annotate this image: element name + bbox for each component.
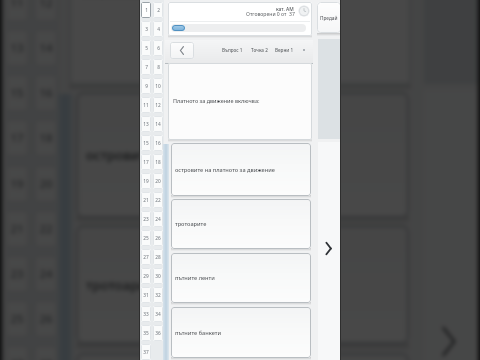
staticText: 3 bbox=[145, 26, 148, 33]
button[interactable]: 15 bbox=[141, 135, 151, 151]
staticText: 21 bbox=[143, 197, 149, 204]
button[interactable]: 23 bbox=[141, 211, 151, 227]
staticText: Платното за движение включва: bbox=[173, 97, 260, 104]
staticText: 26 bbox=[155, 235, 161, 242]
button[interactable]: 33 bbox=[141, 306, 151, 322]
staticText: 26 bbox=[39, 311, 53, 327]
staticText: 17 bbox=[143, 159, 149, 166]
button[interactable]: 31 bbox=[141, 287, 151, 303]
button[interactable]: 37 bbox=[141, 344, 151, 360]
staticText: 31 bbox=[143, 292, 149, 299]
staticText: 29 bbox=[143, 273, 149, 280]
staticText: 23 bbox=[143, 216, 149, 223]
button[interactable]: 32 bbox=[153, 287, 163, 303]
button[interactable]: 2 bbox=[153, 2, 163, 18]
staticText: Въпрос 1 bbox=[222, 47, 243, 53]
button[interactable]: Back bbox=[170, 42, 194, 59]
button[interactable]: 19 bbox=[141, 173, 151, 189]
staticText: 18 bbox=[155, 159, 161, 166]
button[interactable]: 35 bbox=[141, 325, 151, 341]
staticText: Точка 2 bbox=[251, 47, 268, 53]
staticText: 15 bbox=[10, 85, 24, 101]
staticText: 20 bbox=[39, 176, 53, 192]
button[interactable]: 9 bbox=[141, 78, 151, 94]
staticText: 12 bbox=[155, 102, 161, 109]
staticText: 36 bbox=[155, 330, 161, 337]
button[interactable]: 26 bbox=[153, 230, 163, 246]
staticText: 1 bbox=[145, 7, 148, 14]
button[interactable]: 16 bbox=[153, 135, 163, 151]
staticText: 15 bbox=[143, 140, 149, 147]
button[interactable]: 5 bbox=[141, 40, 151, 56]
staticText: 16 bbox=[39, 85, 53, 101]
staticText: 7 bbox=[145, 64, 148, 71]
staticText: 18 bbox=[39, 130, 53, 146]
button[interactable]: 30 bbox=[153, 268, 163, 284]
staticText: Верни 1 bbox=[275, 47, 294, 53]
button[interactable]: 34 bbox=[153, 306, 163, 322]
button[interactable]: 8 bbox=[153, 59, 163, 75]
button[interactable]: 12 bbox=[153, 97, 163, 113]
staticText: тротоарите bbox=[86, 276, 161, 294]
staticText: пътните ленти bbox=[175, 274, 215, 282]
button[interactable]: Предай bbox=[317, 2, 341, 33]
staticText: 14 bbox=[39, 40, 53, 56]
staticText: 14 bbox=[155, 121, 161, 128]
staticText: 2 bbox=[157, 7, 160, 14]
staticText: 8 bbox=[157, 64, 160, 71]
staticText: 4 bbox=[157, 26, 160, 33]
button[interactable]: пътните ленти bbox=[171, 253, 311, 303]
button[interactable]: 21 bbox=[141, 192, 151, 208]
staticText: 16 bbox=[155, 140, 161, 147]
staticText: 37 bbox=[143, 349, 149, 356]
button[interactable]: 6 bbox=[153, 40, 163, 56]
staticText: 25 bbox=[10, 311, 24, 327]
staticText: 33 bbox=[143, 311, 149, 318]
button[interactable]: тротоарите bbox=[171, 199, 311, 249]
staticText: 13 bbox=[143, 121, 149, 128]
button[interactable]: Timer bbox=[298, 5, 310, 17]
staticText: Отговорени 0 от 37 bbox=[246, 11, 295, 18]
staticText: 28 bbox=[155, 254, 161, 261]
staticText: 27 bbox=[143, 254, 149, 261]
button[interactable]: 13 bbox=[141, 116, 151, 132]
button[interactable]: 11 bbox=[141, 97, 151, 113]
button[interactable]: 36 bbox=[153, 325, 163, 341]
button[interactable]: 18 bbox=[153, 154, 163, 170]
button[interactable]: 29 bbox=[141, 268, 151, 284]
staticText: 35 bbox=[143, 330, 149, 337]
button[interactable]: 10 bbox=[153, 78, 163, 94]
button[interactable]: 14 bbox=[153, 116, 163, 132]
staticText: островите на платното за движение bbox=[175, 166, 275, 174]
staticText: 19 bbox=[143, 178, 149, 185]
staticText: 10 bbox=[155, 83, 161, 90]
staticText: 22 bbox=[155, 197, 161, 204]
button[interactable]: островите на платното за движение bbox=[171, 143, 311, 196]
button[interactable]: 20 bbox=[153, 173, 163, 189]
button[interactable]: 24 bbox=[153, 211, 163, 227]
button[interactable]: пътните банкети bbox=[171, 307, 311, 358]
button[interactable]: 22 bbox=[153, 192, 163, 208]
button[interactable]: 4 bbox=[153, 21, 163, 37]
button[interactable]: 3 bbox=[141, 21, 151, 37]
button[interactable]: 1 bbox=[141, 2, 151, 18]
staticText: 22 bbox=[39, 221, 53, 237]
staticText: 34 bbox=[155, 311, 161, 318]
staticText: 19 bbox=[10, 176, 24, 192]
button[interactable]: 25 bbox=[141, 230, 151, 246]
button[interactable]: 28 bbox=[153, 249, 163, 265]
button[interactable]: 7 bbox=[141, 59, 151, 75]
staticText: 6 bbox=[157, 45, 160, 52]
staticText: тротоарите bbox=[175, 220, 207, 228]
staticText: 25 bbox=[143, 235, 149, 242]
button[interactable]: 17 bbox=[141, 154, 151, 170]
button[interactable]: Next question bbox=[318, 142, 341, 360]
button[interactable]: 27 bbox=[141, 249, 151, 265]
staticText: 30 bbox=[155, 273, 161, 280]
staticText: Предай bbox=[320, 15, 338, 21]
staticText: 20 bbox=[155, 178, 161, 185]
